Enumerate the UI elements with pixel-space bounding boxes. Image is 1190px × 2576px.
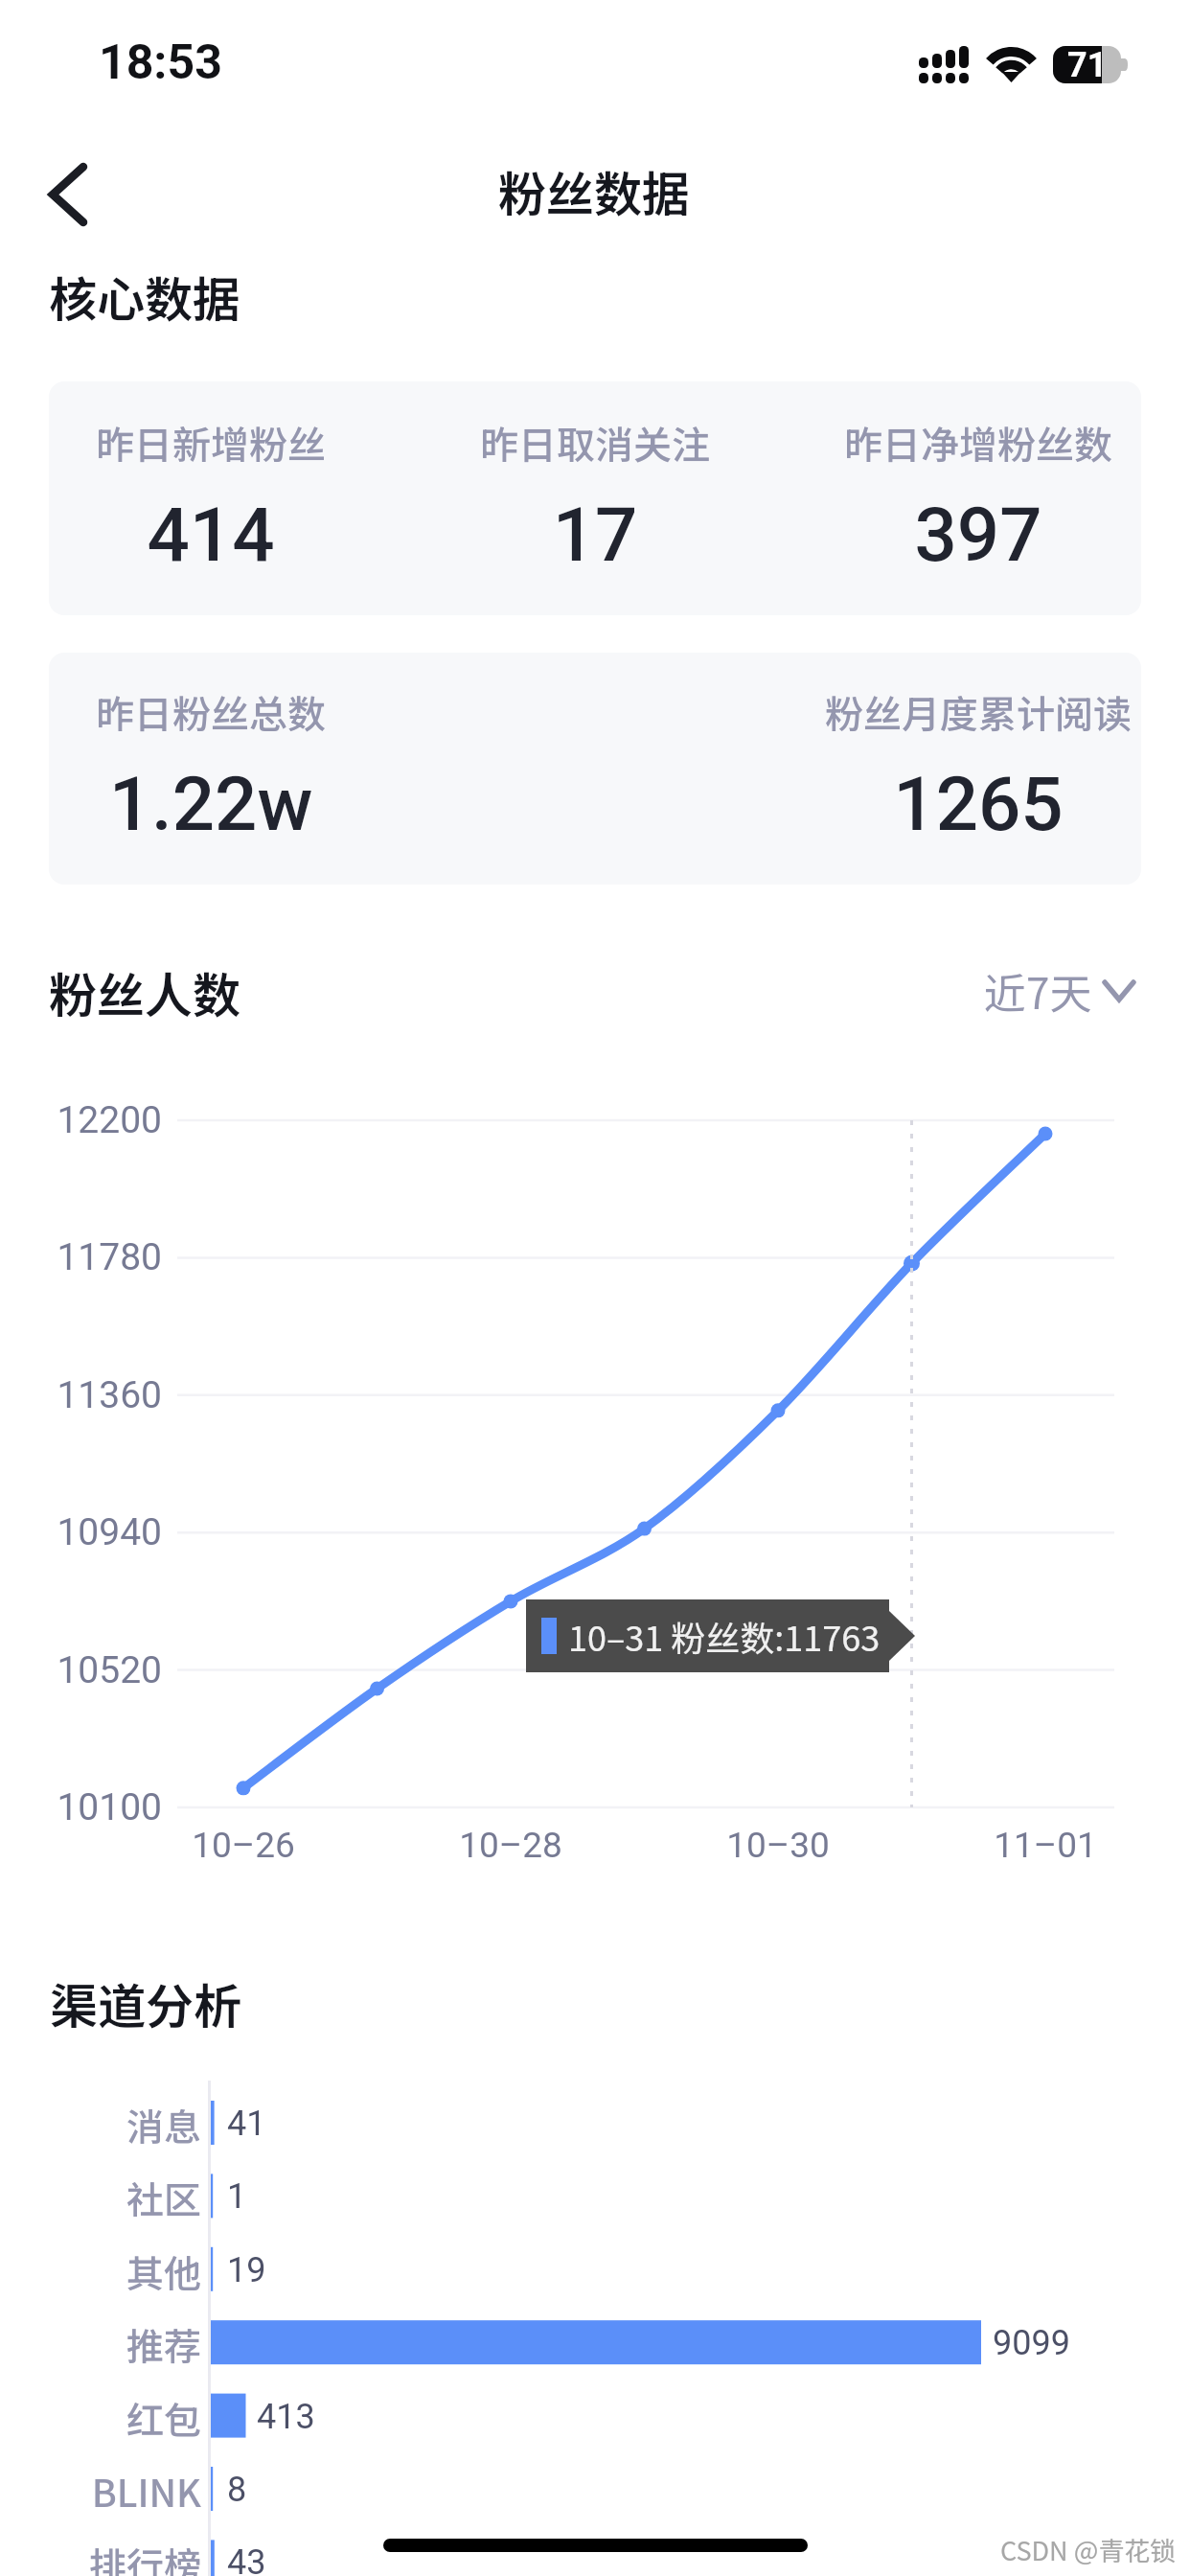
- button[interactable]: [0, 2233, 1140, 2306]
- staticText: 1.22w: [0, 761, 450, 848]
- button[interactable]: [0, 2525, 1140, 2576]
- staticText: 1: [227, 2176, 247, 2217]
- staticText: 10100: [0, 1785, 162, 1829]
- button[interactable]: [0, 2380, 1140, 2452]
- staticText: 昨日净增粉丝数: [739, 415, 1190, 471]
- staticText: 近7天: [984, 960, 1092, 1022]
- staticText: 昨日取消关注: [355, 415, 835, 471]
- staticText: 11780: [0, 1235, 162, 1279]
- staticText: 9099: [993, 2323, 1070, 2363]
- button[interactable]: [0, 2086, 1140, 2159]
- staticText: 414: [0, 492, 450, 579]
- staticText: 18:53: [99, 34, 222, 91]
- staticText: 其他: [0, 2244, 201, 2298]
- staticText: 71: [1067, 45, 1108, 85]
- button[interactable]: [49, 381, 1141, 615]
- button[interactable]: 近7天: [984, 960, 1136, 1022]
- staticText: 10940: [0, 1510, 162, 1554]
- staticText: 11–01: [930, 1825, 1160, 1866]
- staticText: 11360: [0, 1373, 162, 1417]
- staticText: 19: [227, 2250, 266, 2290]
- staticText: 推荐: [0, 2317, 201, 2371]
- staticText: 核心数据: [49, 262, 240, 331]
- button[interactable]: [0, 2306, 1140, 2379]
- staticText: 渠道分析: [50, 1968, 241, 2037]
- staticText: 消息: [0, 2098, 201, 2151]
- staticText: 12200: [0, 1098, 162, 1142]
- button[interactable]: Back: [27, 153, 109, 236]
- staticText: 43: [227, 2542, 266, 2576]
- button[interactable]: [0, 2452, 1140, 2525]
- staticText: 10520: [0, 1648, 162, 1692]
- staticText: 413: [257, 2397, 315, 2437]
- staticText: 昨日新增粉丝: [0, 415, 450, 471]
- staticText: 红包: [0, 2391, 201, 2445]
- staticText: 8: [227, 2470, 247, 2510]
- staticText: 397: [739, 492, 1190, 579]
- staticText: 17: [355, 492, 835, 579]
- staticText: 1265: [739, 761, 1190, 848]
- staticText: 社区: [0, 2171, 201, 2224]
- staticText: 41: [227, 2104, 266, 2144]
- staticText: 10–31 粉丝数:11763: [568, 1611, 881, 1661]
- staticText: 10–28: [396, 1825, 626, 1866]
- staticText: 排行榜: [0, 2537, 201, 2576]
- staticText: 昨日粉丝总数: [0, 684, 450, 740]
- staticText: BLINK: [0, 2464, 201, 2518]
- staticText: 粉丝数据: [211, 156, 977, 225]
- staticText: CSDN @青花锁: [1000, 2531, 1177, 2568]
- staticText: 粉丝人数: [49, 957, 240, 1026]
- staticText: 10–26: [128, 1825, 358, 1866]
- button[interactable]: [49, 653, 1141, 885]
- staticText: 粉丝月度累计阅读: [739, 684, 1190, 740]
- staticText: 10–30: [663, 1825, 893, 1866]
- button[interactable]: [0, 2159, 1140, 2232]
